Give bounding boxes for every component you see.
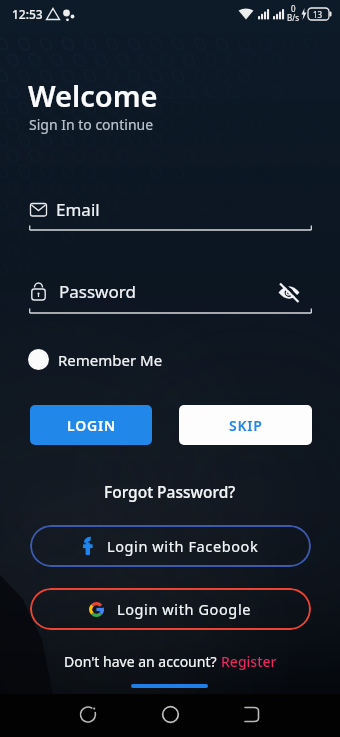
- button[interactable]: Remember Me: [28, 349, 163, 370]
- button[interactable]: LOGIN: [30, 405, 152, 445]
- staticText: Email: [56, 198, 100, 221]
- button[interactable]: Forgot Password?: [104, 481, 236, 502]
- staticText: LOGIN: [67, 416, 116, 435]
- staticText: Password: [59, 280, 136, 303]
- button[interactable]: Login with Facebook: [30, 525, 311, 567]
- button[interactable]: Email: [56, 198, 176, 224]
- staticText: 12:53: [12, 6, 43, 22]
- button[interactable]: [272, 276, 306, 308]
- staticText: Welcome: [28, 76, 158, 115]
- staticText: Remember Me: [58, 350, 163, 370]
- staticText: Forgot Password?: [104, 481, 236, 502]
- staticText: Sign In to continue: [29, 115, 154, 134]
- staticText: 13: [313, 9, 323, 20]
- button[interactable]: [224, 694, 280, 737]
- button[interactable]: Don't have an account?: [64, 652, 277, 671]
- staticText: Register: [221, 652, 277, 671]
- staticText: B/s: [287, 12, 300, 23]
- button[interactable]: Password: [59, 280, 209, 306]
- staticText: Don't have an account?: [64, 652, 221, 671]
- button[interactable]: SKIP: [179, 405, 312, 445]
- staticText: SKIP: [229, 416, 263, 435]
- button[interactable]: [60, 694, 116, 737]
- button[interactable]: [142, 694, 198, 737]
- staticText: 0: [291, 3, 296, 14]
- staticText: Login with Google: [117, 599, 252, 619]
- staticText: Login with Facebook: [107, 536, 259, 556]
- button[interactable]: Login with Google: [30, 588, 311, 630]
